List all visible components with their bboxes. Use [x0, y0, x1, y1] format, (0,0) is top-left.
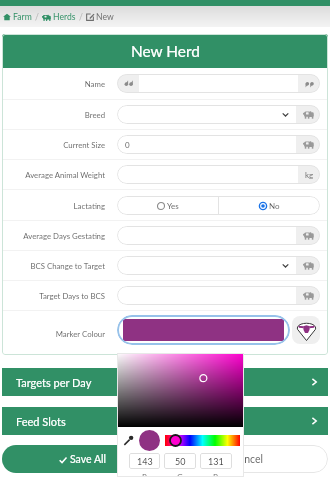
- button[interactable]: 143: [129, 453, 160, 469]
- staticText: BCS Change to Target: [30, 261, 105, 270]
- button[interactable]: Farm: [2, 12, 33, 22]
- button[interactable]: Herds: [41, 12, 77, 22]
- staticText: 0: [125, 140, 130, 150]
- button[interactable]: Choose animal: [296, 226, 320, 245]
- staticText: No: [269, 201, 280, 211]
- staticText: Current Size: [63, 140, 105, 149]
- staticText: /: [79, 12, 83, 22]
- staticText: 50: [175, 456, 186, 467]
- staticText: kg: [305, 170, 314, 180]
- staticText: Marker Colour: [55, 329, 105, 338]
- button[interactable]: No: [219, 196, 320, 215]
- button[interactable]: New: [85, 12, 115, 22]
- button[interactable]: Choose animal: [296, 256, 320, 275]
- button[interactable]: Yes: [117, 196, 218, 215]
- staticText: B: [213, 472, 219, 477]
- staticText: Targets per Day: [16, 376, 92, 389]
- button[interactable]: Choose animal: [296, 135, 320, 154]
- staticText: R: [142, 472, 148, 477]
- staticText: Save All: [70, 453, 106, 466]
- staticText: Target Days to BCS: [39, 291, 105, 300]
- button[interactable]: Choose animal: [296, 286, 320, 305]
- staticText: G: [177, 472, 183, 477]
- button[interactable]: [123, 319, 284, 341]
- button[interactable]: Marker colour: [292, 316, 320, 344]
- button[interactable]: Feed Slots: [2, 407, 328, 435]
- staticText: Average Days Gestating: [23, 231, 105, 240]
- button[interactable]: 50: [164, 453, 196, 469]
- staticText: New Herd: [131, 42, 200, 60]
- button[interactable]: Choose animal: [296, 105, 320, 124]
- staticText: Name: [84, 79, 105, 88]
- staticText: Farm: [13, 12, 32, 22]
- button[interactable]: Save All: [2, 445, 162, 473]
- staticText: Yes: [167, 201, 179, 211]
- button[interactable]: 131: [200, 453, 232, 469]
- staticText: Lactating: [73, 201, 105, 210]
- staticText: New: [96, 12, 114, 22]
- staticText: Cancel: [232, 453, 264, 466]
- button[interactable]: Cancel: [168, 445, 328, 473]
- staticText: 143: [137, 456, 153, 467]
- staticText: /: [35, 12, 39, 22]
- staticText: 131: [208, 456, 224, 467]
- staticText: Average Animal Weight: [25, 170, 105, 179]
- staticText: Herds: [53, 12, 76, 22]
- staticText: Feed Slots: [16, 415, 66, 428]
- button[interactable]: Targets per Day: [2, 368, 328, 396]
- staticText: Breed: [84, 110, 105, 119]
